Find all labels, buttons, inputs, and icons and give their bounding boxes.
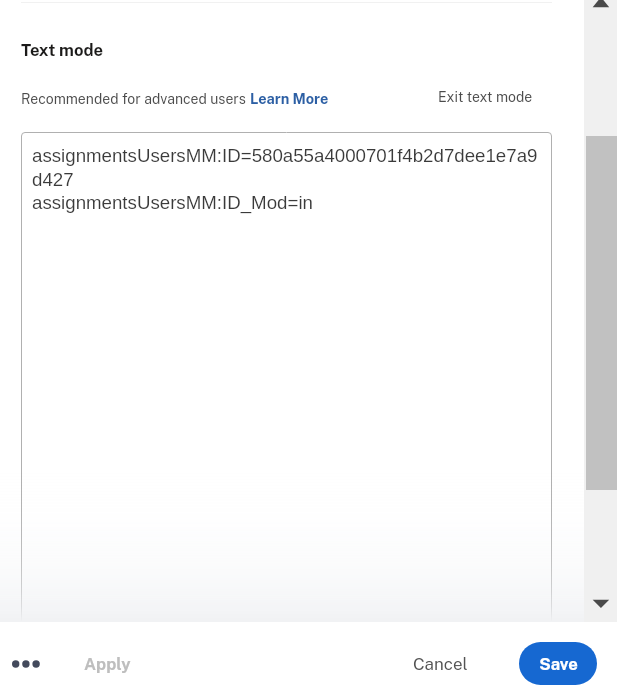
staticText: Save xyxy=(539,654,578,674)
button[interactable]: Cancel xyxy=(402,648,478,680)
staticText: Text mode xyxy=(21,40,104,60)
staticText: Cancel xyxy=(413,654,468,674)
button[interactable]: Scroll up xyxy=(584,0,617,16)
staticText: assignmentsUsersMM:ID=580a55a4000701f4b2… xyxy=(32,145,538,213)
staticText: Learn More xyxy=(250,90,329,107)
button[interactable]: More options xyxy=(5,648,49,680)
staticText: Exit text mode xyxy=(438,89,533,105)
button[interactable]: Learn More xyxy=(250,90,329,107)
staticText: Recommended for advanced users xyxy=(21,91,246,107)
button[interactable]: Exit text mode xyxy=(438,89,533,105)
staticText: Apply xyxy=(84,654,131,674)
button[interactable]: Apply xyxy=(72,648,142,680)
button[interactable]: Scroll down xyxy=(584,596,617,622)
button[interactable]: Save xyxy=(519,642,597,685)
